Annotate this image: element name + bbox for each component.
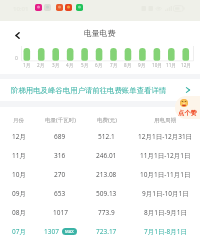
staticText: 电费(元) bbox=[97, 116, 117, 124]
staticText: 509.13 bbox=[96, 189, 117, 198]
staticText: 08月 bbox=[12, 208, 26, 217]
staticText: 270 bbox=[54, 170, 66, 179]
staticText: 1月 bbox=[23, 62, 31, 68]
staticText: 11月1日-12月1日 bbox=[140, 151, 191, 160]
staticText: 1017 bbox=[53, 208, 68, 217]
staticText: 246.01 bbox=[96, 151, 117, 160]
staticText: 12月 bbox=[12, 132, 26, 141]
button[interactable]: Like bbox=[175, 96, 200, 119]
staticText: 5月 bbox=[81, 62, 89, 68]
staticText: 09月 bbox=[12, 189, 26, 198]
staticText: 213.08 bbox=[96, 170, 117, 179]
staticText: 7月1日-8月1日 bbox=[144, 227, 187, 236]
staticText: 11月 bbox=[12, 151, 26, 160]
staticText: 12月1日-12月31日 bbox=[138, 132, 193, 141]
staticText: 10月 bbox=[152, 62, 162, 68]
button[interactable]: 10月 bbox=[0, 165, 200, 184]
staticText: 9月 bbox=[138, 62, 146, 68]
staticText: 723.17 bbox=[96, 227, 117, 236]
staticText: 2月 bbox=[37, 62, 45, 68]
staticText: 10月1日-11月1日 bbox=[140, 170, 191, 179]
staticText: 07月 bbox=[12, 227, 26, 236]
button[interactable]: 11月 bbox=[0, 146, 200, 165]
staticText: 点个赞 bbox=[178, 109, 197, 117]
staticText: 用电周期 bbox=[154, 117, 176, 124]
staticText: 9月1日-10月1日 bbox=[142, 189, 189, 198]
staticText: 12月 bbox=[181, 62, 191, 68]
staticText: 0 bbox=[15, 55, 18, 62]
button[interactable]: 09月 bbox=[0, 184, 200, 203]
staticText: 7月 bbox=[110, 62, 118, 68]
staticText: 8月1日-9月1日 bbox=[144, 208, 187, 217]
button[interactable]: 12月 bbox=[0, 127, 200, 146]
staticText: 316 bbox=[54, 151, 66, 160]
staticText: 773.9 bbox=[98, 208, 115, 217]
staticText: 1307 bbox=[44, 227, 59, 236]
staticText: MAX bbox=[65, 229, 74, 234]
button[interactable]: 08月 bbox=[0, 203, 200, 222]
staticText: 10月 bbox=[12, 170, 26, 179]
button[interactable]: 07月 bbox=[0, 222, 200, 240]
staticText: 512.1 bbox=[98, 132, 115, 141]
button[interactable]: Back bbox=[9, 27, 25, 43]
staticText: 4月 bbox=[66, 62, 74, 68]
staticText: 689 bbox=[54, 132, 66, 141]
staticText: 8月 bbox=[124, 62, 132, 68]
staticText: 阶梯用电及峰谷电用户请前往电费账单查看详情 bbox=[11, 86, 167, 95]
staticText: 653 bbox=[54, 189, 66, 198]
staticText: 3月 bbox=[52, 62, 60, 68]
staticText: 电量(千瓦时) bbox=[45, 116, 76, 124]
staticText: 电量电费 bbox=[84, 28, 116, 38]
staticText: 月份 bbox=[13, 117, 24, 124]
button[interactable]: 阶梯用电及峰谷电用户请前往电费账单查看详情 bbox=[0, 79, 200, 101]
staticText: 6月 bbox=[95, 62, 103, 68]
staticText: 11月 bbox=[166, 62, 176, 68]
